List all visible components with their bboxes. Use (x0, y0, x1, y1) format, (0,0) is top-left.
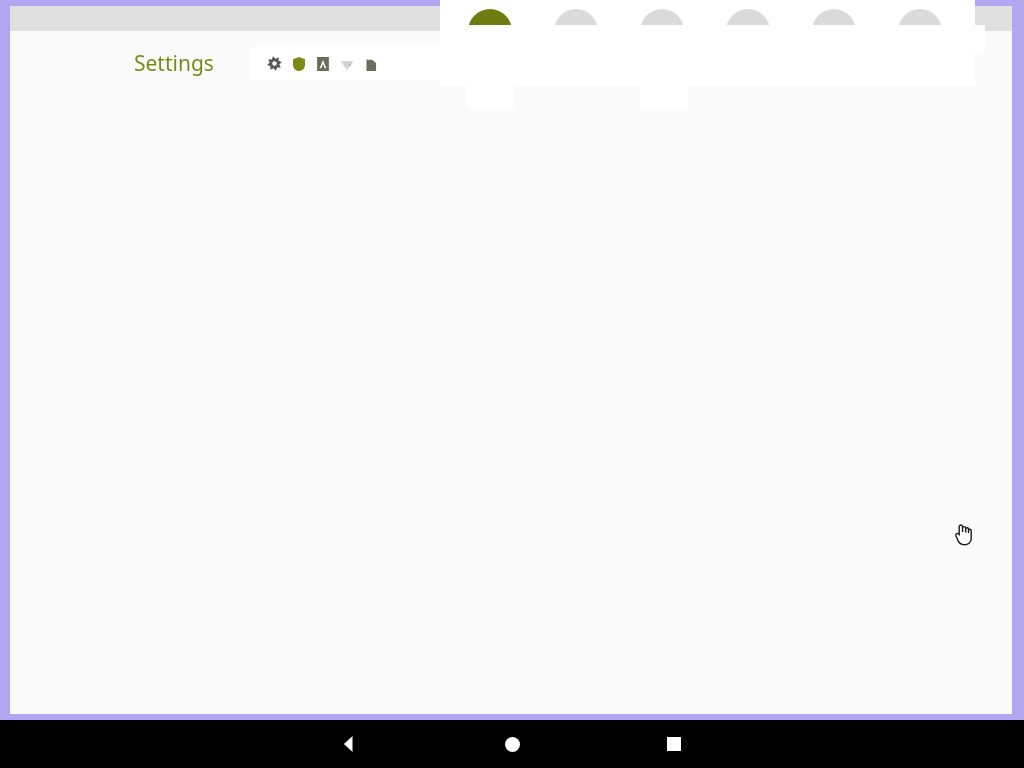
button[interactable] (726, 9, 770, 53)
button[interactable]: Recent apps (650, 720, 698, 768)
other: Network (340, 57, 354, 71)
button[interactable] (812, 9, 856, 53)
other: Security (292, 57, 306, 71)
button[interactable] (468, 9, 512, 53)
button[interactable] (440, 0, 975, 86)
button[interactable] (554, 9, 598, 53)
button[interactable]: Home (488, 720, 536, 768)
button[interactable] (640, 9, 684, 53)
button[interactable] (898, 9, 942, 53)
button[interactable]: Back (325, 720, 373, 768)
other: Settings (267, 56, 282, 71)
other: Storage (364, 57, 378, 71)
button[interactable]: Settings (134, 49, 214, 78)
button[interactable]: Settings (250, 47, 451, 80)
other: Apps (316, 57, 330, 71)
